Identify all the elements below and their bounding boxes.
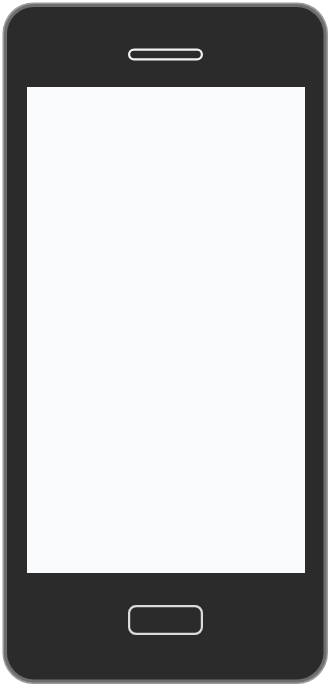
other: Phone device mockup with blank screen bbox=[0, 0, 331, 688]
